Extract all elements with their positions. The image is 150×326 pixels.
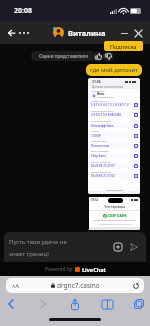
button[interactable]: Bookmarks: [98, 295, 116, 313]
staticText: drgnc7.casino: [57, 281, 100, 290]
button[interactable]: 5 4 7 6 9 4 6 7 2 3 4 5 8 9 1 2: [91, 102, 138, 107]
staticText: СБЕР БАНК: [108, 213, 127, 218]
staticText: Powered by: [45, 266, 73, 273]
button[interactable]: More options: [17, 26, 31, 40]
staticText: 3 000 ₽: [91, 134, 101, 138]
button[interactable]: Close: [131, 26, 145, 40]
button[interactable]: Подписка: [104, 41, 143, 51]
staticText: Иван: [97, 92, 105, 96]
staticText: 06 49 85 21 07 02: [91, 174, 115, 178]
staticText: 21:06: [92, 79, 101, 84]
button[interactable]: Tabs: [130, 295, 148, 313]
staticText: LiveChat: [82, 266, 106, 273]
staticText: Тинькофф Банк: [97, 96, 115, 99]
button[interactable]: Forward: [34, 295, 52, 313]
staticText: 10 января 2025 18:51:37 мск: [89, 222, 140, 225]
staticText: Комментарий: [91, 139, 108, 142]
staticText: Виталина: [68, 28, 106, 38]
staticText: где мой депозит: [90, 66, 138, 74]
staticText: Подписка: [110, 43, 137, 50]
staticText: Сумма: [91, 129, 99, 132]
staticText: Номер карты: [91, 99, 107, 102]
button[interactable]: Оцени представителя: [31, 51, 95, 61]
button[interactable]: Send: [128, 241, 140, 253]
staticText: Банк перевода: [91, 149, 109, 152]
staticText: Сумма пополнения: [91, 109, 114, 112]
staticText: Получатель: [91, 89, 105, 92]
button[interactable]: Share: [66, 295, 84, 313]
staticText: Чек перевода: [89, 205, 140, 209]
button[interactable]: Back: [4, 26, 18, 40]
button[interactable]: Minimize: [117, 26, 131, 40]
button[interactable]: Rate bad: [103, 51, 114, 62]
staticText: 3 0 0 0 1 0 0 RUB 3456: [91, 113, 122, 117]
staticText: Пусть твоя удача не знает границ!: [9, 238, 83, 257]
staticText: Детали пополнения: [92, 85, 123, 89]
staticText: 5 4 7 6 9 4 6 7 2 3 4 5 8 9 1 2: [91, 103, 129, 107]
staticText: Сбер Банк: [91, 154, 106, 158]
staticText: Тинькофф банк: [91, 124, 114, 128]
staticText: ᴀA: [12, 282, 19, 290]
button[interactable]: Тинькофф банк: [91, 123, 138, 128]
button[interactable]: Пополнение: [91, 143, 138, 148]
staticText: Банк получателя: [91, 119, 111, 122]
button[interactable]: Back: [2, 295, 20, 313]
staticText: 06 49 85 21 07 07: [91, 164, 115, 168]
button[interactable]: Сбер Банк: [91, 153, 138, 158]
button[interactable]: Rate good: [93, 51, 104, 62]
button[interactable]: 06 49 85 21 07 02: [91, 173, 138, 178]
staticText: Пополнение: [91, 144, 110, 148]
staticText: Номер телефона: [91, 170, 111, 173]
button[interactable]: Attach file: [112, 241, 124, 253]
staticText: Перевод по номеру карты выполнен: [89, 218, 140, 221]
button[interactable]: ᴀA: [6, 278, 144, 293]
staticText: Оцени представителя: [39, 53, 88, 59]
button[interactable]: 3 000 ₽: [91, 133, 138, 138]
button[interactable]: Reload: [131, 281, 140, 290]
staticText: 20:08: [14, 6, 32, 16]
staticText: Номер телефона: [91, 160, 111, 163]
button[interactable]: 06 49 85 21 07 07: [91, 163, 138, 168]
button[interactable]: 3 0 0 0 1 0 0 RUB 3456: [91, 112, 138, 117]
staticText: 18:52: [91, 198, 99, 202]
